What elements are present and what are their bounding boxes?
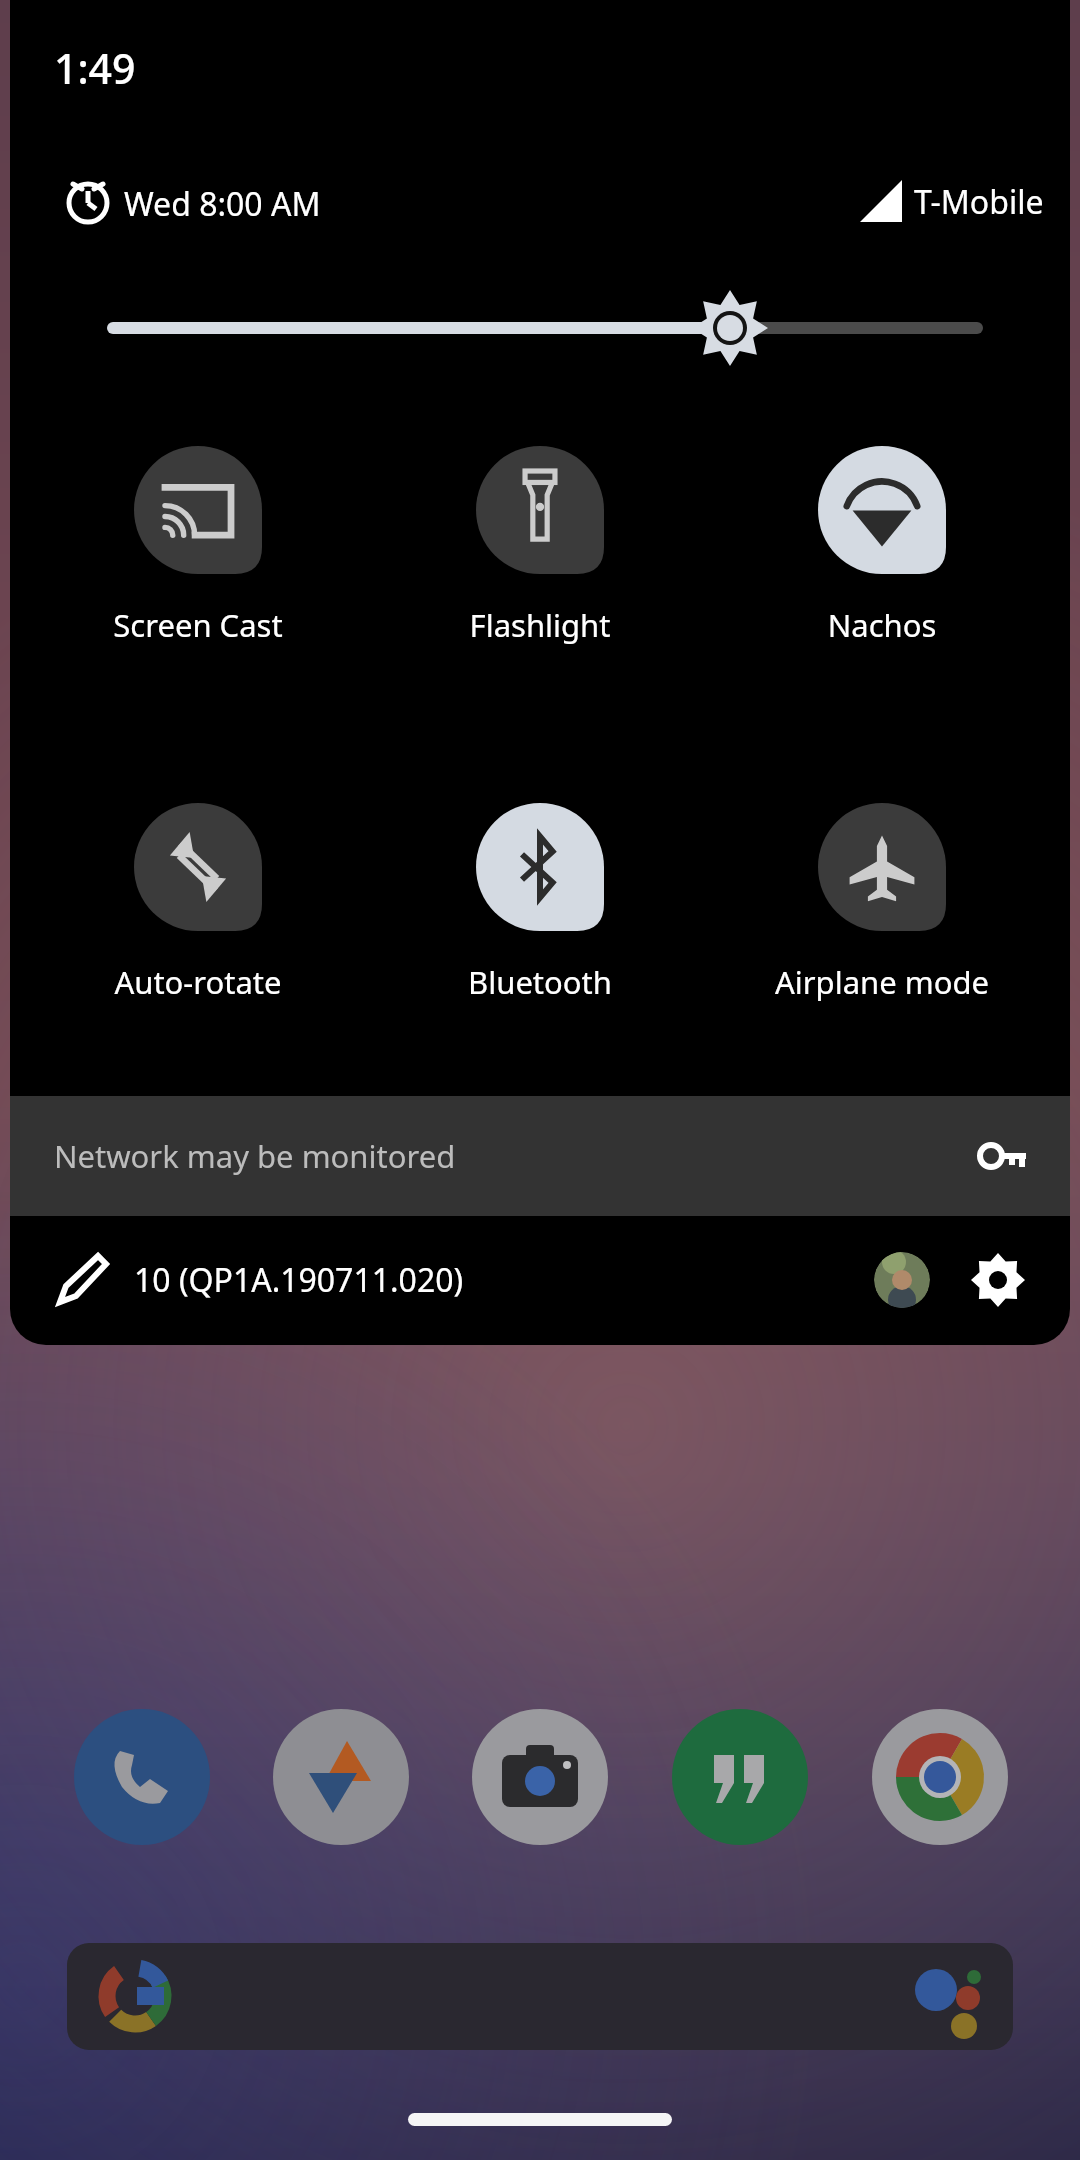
- button[interactable]: Google Search: [67, 1943, 1013, 2050]
- button[interactable]: [476, 803, 604, 1013]
- staticText: Auto-rotate: [18, 961, 378, 1003]
- staticText: Flashlight: [360, 604, 720, 646]
- staticText: T-Mobile: [914, 180, 1044, 224]
- staticText: Bluetooth: [360, 961, 720, 1003]
- button[interactable]: [134, 803, 262, 1013]
- button[interactable]: Edit tiles: [54, 1254, 106, 1306]
- button[interactable]: Network may be monitored: [10, 1096, 1070, 1216]
- staticText: Nachos: [702, 604, 1062, 646]
- button[interactable]: [818, 446, 946, 656]
- staticText: 10 (QP1A.190711.020): [134, 1258, 464, 1302]
- staticText: Network may be monitored: [54, 1135, 456, 1177]
- staticText: Airplane mode: [702, 961, 1062, 1003]
- staticText: Wed 8:00 AM: [124, 182, 321, 226]
- staticText: Screen Cast: [18, 604, 378, 646]
- button[interactable]: User account: [874, 1252, 930, 1308]
- staticText: 1:49: [54, 40, 136, 96]
- button[interactable]: [476, 446, 604, 656]
- button[interactable]: [134, 446, 262, 656]
- button[interactable]: [818, 803, 946, 1013]
- button[interactable]: Settings: [970, 1252, 1026, 1308]
